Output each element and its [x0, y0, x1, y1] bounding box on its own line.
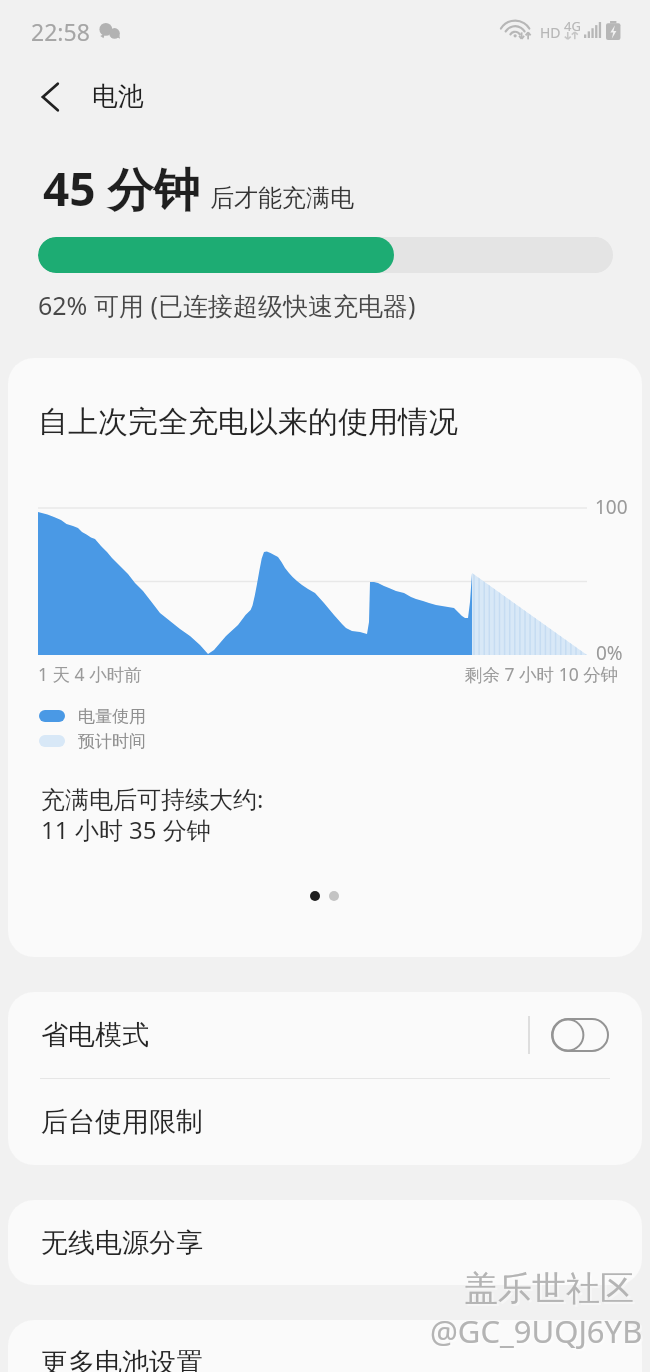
staticText: 省电模式: [41, 1018, 149, 1052]
staticText: 100: [595, 494, 628, 520]
staticText: 预计时间: [78, 731, 146, 752]
button[interactable]: 无线电源分享: [8, 1200, 642, 1285]
staticText: @GC_9UQJ6YB: [430, 1310, 643, 1352]
staticText: 0%: [596, 640, 623, 666]
staticText: 45 分钟: [43, 157, 200, 220]
staticText: 11 小时 35 分钟: [41, 813, 211, 846]
staticText: 后才能充满电: [210, 183, 354, 213]
staticText: 1 天 4 小时前: [38, 662, 142, 686]
button[interactable]: 后台使用限制: [8, 1079, 642, 1165]
staticText: 22:58: [31, 16, 90, 47]
button[interactable]: 省电模式: [8, 992, 642, 1078]
staticText: HD: [540, 23, 561, 42]
staticText: 无线电源分享: [41, 1226, 203, 1260]
button[interactable]: 更多电池设置: [8, 1320, 642, 1372]
staticText: 盖乐世社区: [464, 1267, 634, 1310]
staticText: 充满电后可持续大约:: [41, 782, 264, 815]
staticText: 电量使用: [78, 706, 146, 727]
staticText: 剩余 7 小时 10 分钟: [465, 662, 619, 686]
staticText: 62% 可用 (已连接超级快速充电器): [38, 288, 416, 322]
staticText: 盖乐世社区: [466, 1269, 636, 1312]
staticText: 后台使用限制: [41, 1105, 203, 1139]
button[interactable]: Power saving toggle: [551, 1018, 609, 1052]
staticText: 电池: [92, 80, 144, 113]
staticText: 更多电池设置: [41, 1346, 203, 1372]
staticText: 4G: [564, 17, 581, 35]
staticText: @GC_9UQJ6YB: [432, 1312, 645, 1354]
button[interactable]: Back: [22, 68, 80, 126]
staticText: 自上次完全充电以来的使用情况: [38, 403, 458, 441]
